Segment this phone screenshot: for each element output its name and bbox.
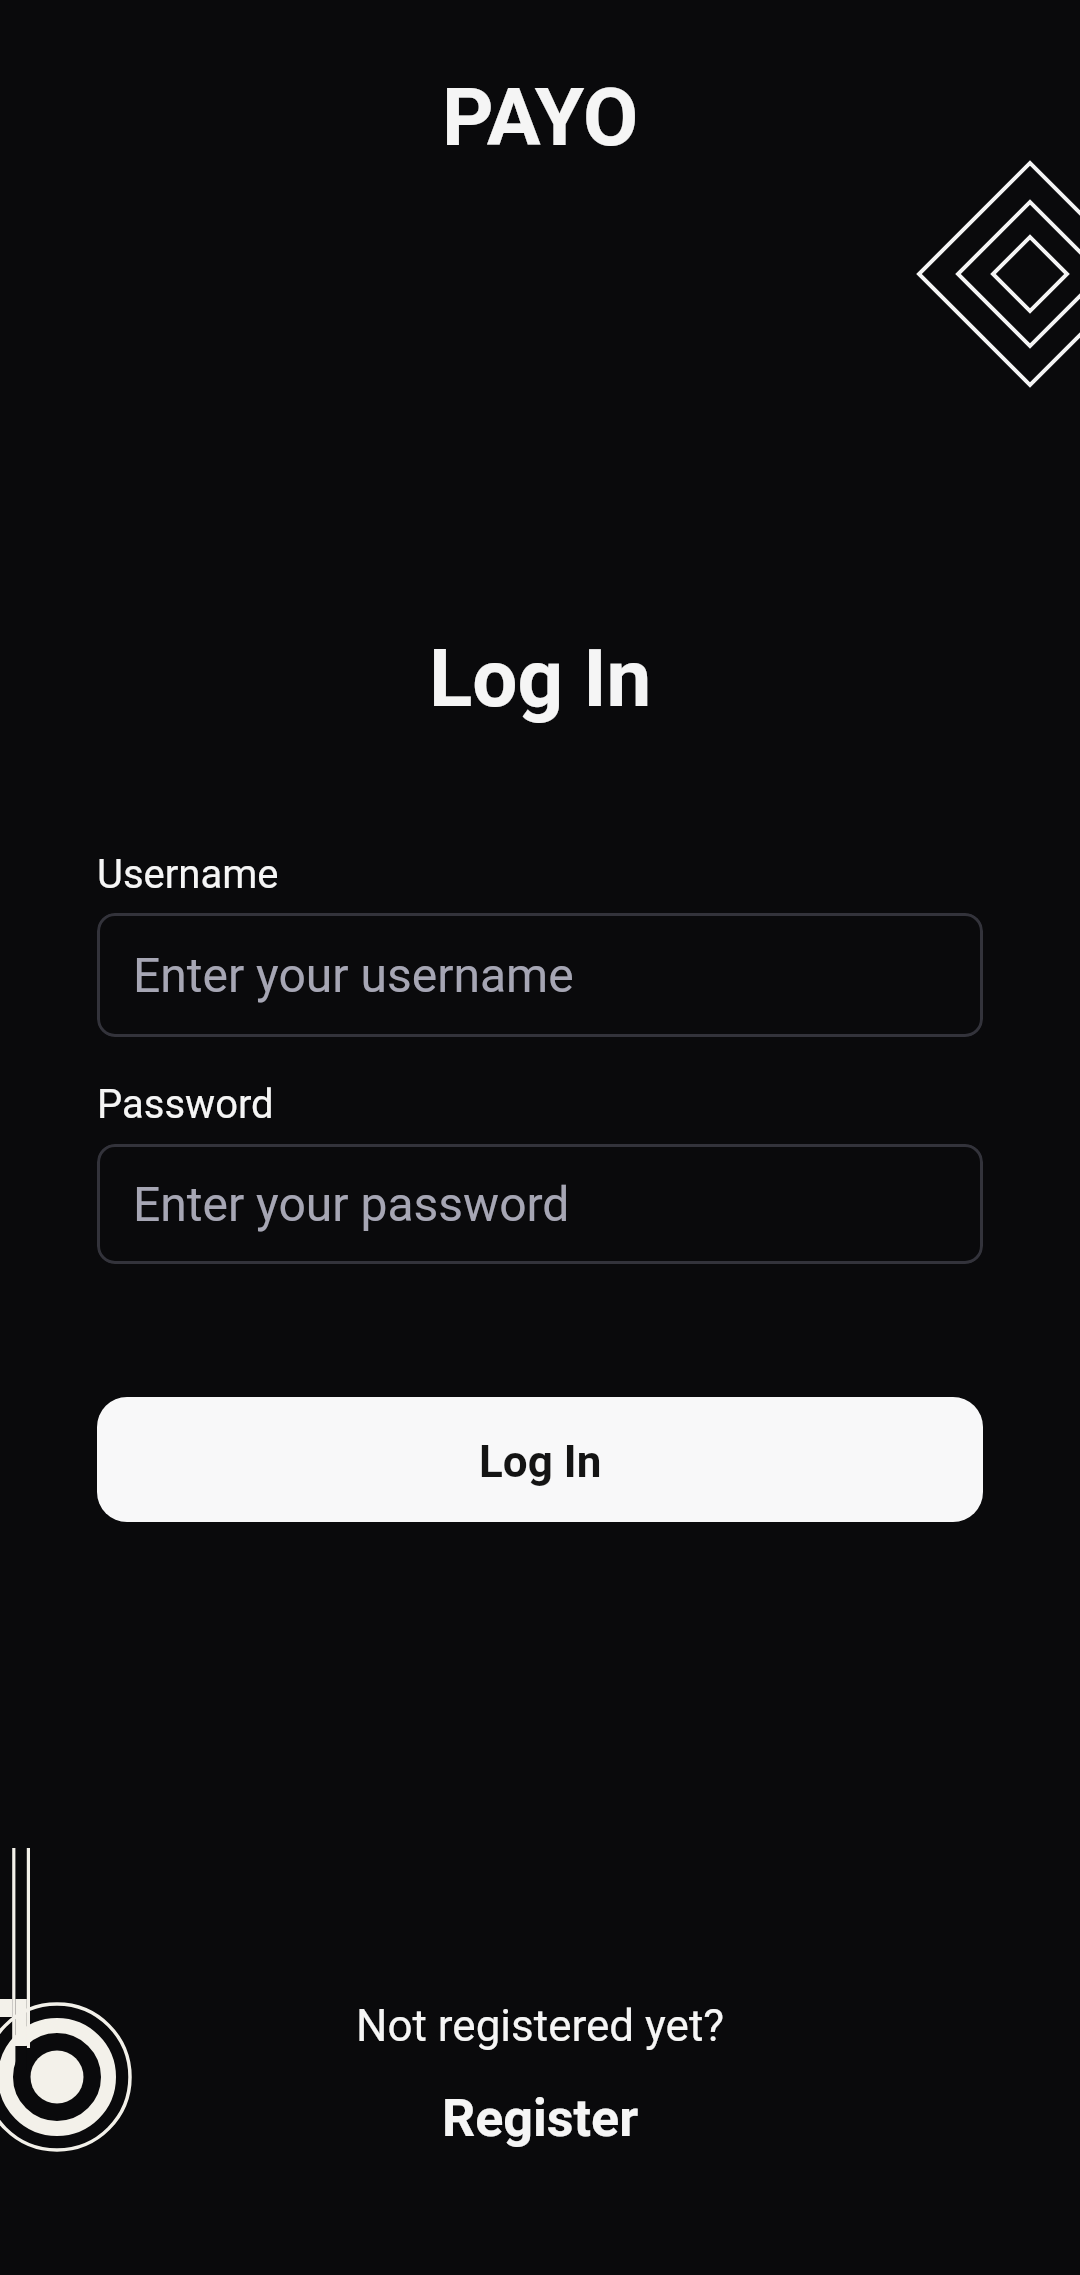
button[interactable]: Enter your password [97, 1144, 983, 1264]
staticText: Log In [429, 632, 652, 726]
button[interactable]: Enter your username [97, 913, 983, 1037]
button[interactable]: Log In [97, 1397, 983, 1522]
staticText: Username [97, 851, 279, 898]
staticText: Enter your username [133, 947, 574, 1003]
staticText: PAYO [442, 71, 639, 165]
button[interactable]: Register [442, 2088, 639, 2149]
staticText: Password [97, 1081, 274, 1128]
staticText: Not registered yet? [356, 2000, 725, 2052]
staticText: Log In [479, 1436, 602, 1488]
staticText: Enter your password [133, 1176, 570, 1232]
